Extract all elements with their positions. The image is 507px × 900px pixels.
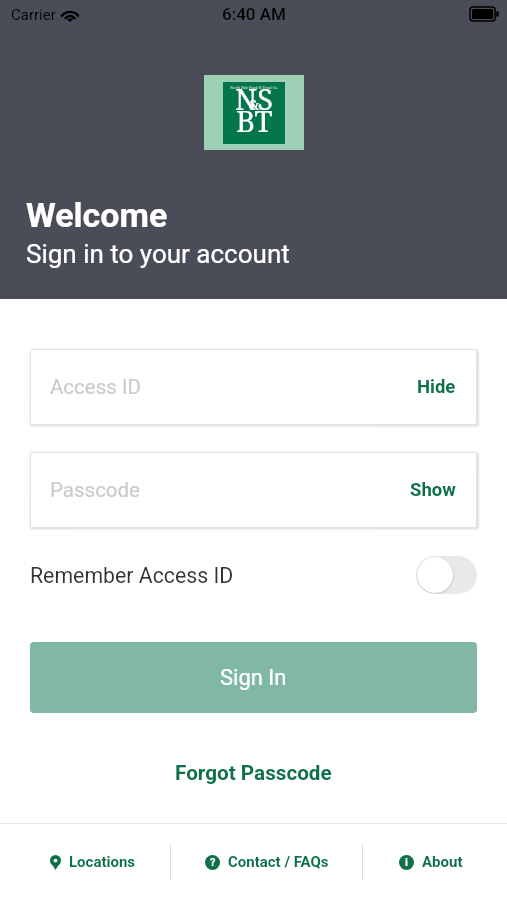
staticText: & xyxy=(249,95,260,114)
button[interactable]: Show xyxy=(406,475,460,505)
staticText: Welcome xyxy=(26,195,168,235)
button[interactable]: Locations xyxy=(15,824,170,900)
staticText: 6:40 AM xyxy=(222,4,286,24)
staticText: North Side Bank & Trust Co. xyxy=(230,85,278,90)
staticText: Access ID xyxy=(50,375,413,399)
button[interactable]: Remember Access ID toggle xyxy=(416,556,477,594)
staticText: ? xyxy=(210,856,216,869)
button[interactable]: Forgot Passcode xyxy=(167,753,340,793)
button[interactable]: i xyxy=(363,824,499,900)
staticText: Show xyxy=(410,479,456,501)
button[interactable]: Passcode xyxy=(30,452,477,528)
staticText: About xyxy=(422,853,463,871)
staticText: Sign in to your account xyxy=(26,239,290,269)
staticText: Locations xyxy=(69,853,136,871)
staticText: Forgot Passcode xyxy=(175,761,332,785)
staticText: BT xyxy=(236,101,273,140)
staticText: Carrier xyxy=(11,6,56,24)
staticText: Sign In xyxy=(220,665,287,691)
staticText: Remember Access ID xyxy=(30,563,234,588)
staticText: Contact / FAQs xyxy=(228,853,329,871)
button[interactable]: Sign In xyxy=(30,642,477,713)
button[interactable]: Hide xyxy=(413,372,460,402)
button[interactable]: ? xyxy=(171,824,362,900)
staticText: i xyxy=(405,856,408,869)
staticText: Passcode xyxy=(50,478,406,502)
staticText: NS xyxy=(235,79,273,118)
staticText: Hide xyxy=(417,376,456,398)
button[interactable]: Access ID xyxy=(30,349,477,425)
